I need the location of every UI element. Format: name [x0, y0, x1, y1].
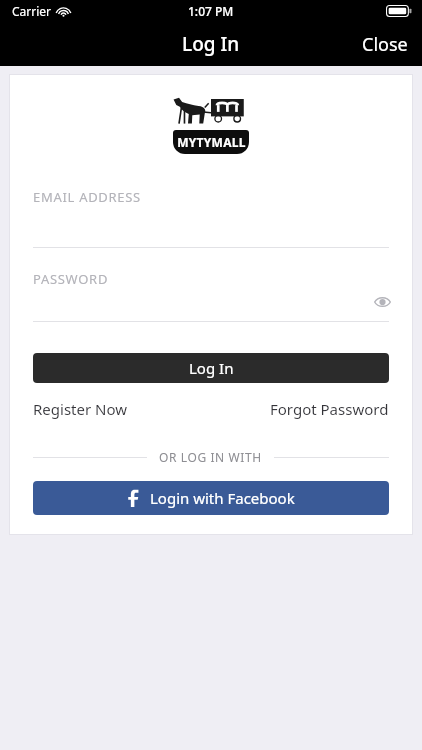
button[interactable]: Register Now — [33, 399, 128, 419]
staticText: Forgot Password — [270, 399, 389, 419]
staticText: MYTYMALL — [177, 134, 246, 150]
staticText: Carrier — [12, 3, 52, 19]
staticText: OR LOG IN WITH — [159, 449, 262, 465]
staticText: PASSWORD — [33, 270, 109, 288]
staticText: Login with Facebook — [150, 488, 295, 508]
staticText: 1:07 PM — [188, 3, 234, 19]
button[interactable]: Forgot Password — [270, 399, 389, 419]
staticText: Register Now — [33, 399, 128, 419]
staticText: Log In — [182, 31, 240, 57]
button[interactable]: Show password — [369, 289, 395, 315]
staticText: Close — [362, 32, 408, 56]
button[interactable]: Close — [348, 22, 422, 66]
staticText: Log In — [189, 358, 234, 378]
button[interactable]: Log In — [33, 353, 389, 383]
staticText: EMAIL ADDRESS — [33, 188, 141, 206]
button[interactable]: Login with Facebook — [33, 481, 389, 515]
